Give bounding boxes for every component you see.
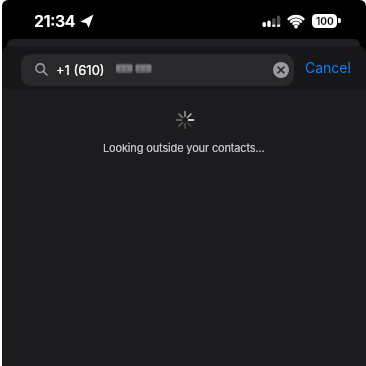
button[interactable] — [273, 62, 289, 78]
staticText: Looking outside your contacts... — [103, 141, 265, 154]
staticText: 100 — [316, 15, 334, 27]
staticText: +1 (610) — [56, 62, 105, 78]
button[interactable]: Cancel — [305, 59, 351, 76]
staticText: 21:34 — [34, 11, 76, 30]
button[interactable]: +1 (610) — [21, 54, 294, 86]
staticText: Cancel — [305, 59, 351, 76]
